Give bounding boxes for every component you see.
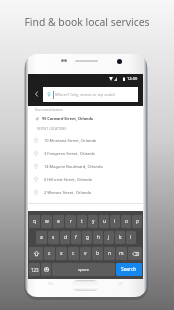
staticText: b xyxy=(96,250,99,257)
staticText: e xyxy=(57,218,60,225)
staticText: l xyxy=(130,234,132,241)
staticText: r xyxy=(70,218,72,225)
button[interactable]: z xyxy=(44,247,55,260)
button[interactable]: 6 Hillcrest Street, Orlando xyxy=(28,173,143,186)
button[interactable]: 10 Montana Street, Orlando xyxy=(28,134,143,147)
staticText: RECENT LOCATIONS xyxy=(37,127,67,131)
staticText: s xyxy=(52,234,55,241)
staticText: Where? (city, street or zip code) xyxy=(55,92,115,98)
button[interactable]: c xyxy=(68,247,79,260)
staticText: w xyxy=(45,218,49,225)
staticText: 6 Hillcrest Street, Orlando xyxy=(44,177,93,182)
button[interactable]: Emoji xyxy=(41,263,51,276)
button[interactable]: Search xyxy=(116,263,142,276)
button[interactable]: a xyxy=(36,231,47,244)
button[interactable]: p xyxy=(132,215,142,228)
staticText: p xyxy=(136,218,139,225)
staticText: c xyxy=(72,250,75,257)
staticText: space xyxy=(78,267,90,273)
button[interactable]: y xyxy=(88,215,98,228)
button[interactable]: g xyxy=(82,231,92,244)
staticText: n xyxy=(108,250,111,257)
button[interactable]: h xyxy=(93,231,103,244)
staticText: k xyxy=(119,234,122,241)
button[interactable]: 3 Fairgreen Street, Orlando xyxy=(28,147,143,160)
staticText: d xyxy=(64,234,67,241)
button[interactable]: n xyxy=(104,247,115,260)
staticText: x xyxy=(60,250,63,257)
staticText: f xyxy=(75,234,77,241)
button[interactable]: v xyxy=(80,247,91,260)
button[interactable]: u xyxy=(99,215,109,228)
button[interactable]: l xyxy=(126,231,136,244)
button[interactable]: 14 Maguire Boulevard, Orlando xyxy=(28,160,143,173)
staticText: 14 Maguire Boulevard, Orlando xyxy=(44,164,103,169)
staticText: Find & book local services xyxy=(0,15,174,29)
button[interactable]: 2 Wessex Street, Orlando xyxy=(28,186,143,199)
staticText: q xyxy=(33,218,36,225)
staticText: g xyxy=(86,234,89,241)
staticText: Search xyxy=(121,266,137,273)
staticText: 123 xyxy=(31,267,39,273)
staticText: 95 Carward Street, Orlando xyxy=(42,116,94,121)
staticText: t xyxy=(81,218,83,225)
button[interactable]: Shift xyxy=(29,247,43,260)
button[interactable]: j xyxy=(104,231,114,244)
staticText: 2 Wessex Street, Orlando xyxy=(44,190,92,195)
button[interactable]: k xyxy=(115,231,125,244)
button[interactable]: s xyxy=(48,231,59,244)
button[interactable]: m xyxy=(116,247,127,260)
button[interactable]: 123 xyxy=(29,263,40,276)
staticText: z xyxy=(48,250,51,257)
staticText: v xyxy=(84,250,87,257)
staticText: h xyxy=(97,234,100,241)
button[interactable]: Backspace xyxy=(128,247,142,260)
button[interactable]: i xyxy=(110,215,120,228)
button[interactable]: x xyxy=(56,247,67,260)
button[interactable]: w xyxy=(41,215,52,228)
staticText: 12:00 xyxy=(127,76,138,81)
staticText: a xyxy=(40,234,43,241)
button[interactable]: o xyxy=(121,215,131,228)
staticText: i xyxy=(114,218,116,225)
staticText: u xyxy=(103,218,106,225)
button[interactable]: r xyxy=(65,215,76,228)
staticText: 3 Fairgreen Street, Orlando xyxy=(44,151,96,156)
button[interactable]: b xyxy=(92,247,103,260)
staticText: y xyxy=(92,218,95,225)
button[interactable]: space xyxy=(52,263,115,276)
staticText: Your current location xyxy=(35,108,63,112)
button[interactable]: q xyxy=(29,215,40,228)
button[interactable]: e xyxy=(53,215,64,228)
button[interactable]: f xyxy=(71,231,81,244)
staticText: 10 Montana Street, Orlando xyxy=(44,138,97,143)
button[interactable]: 95 Carward Street, Orlando xyxy=(28,114,143,124)
staticText: j xyxy=(108,234,110,241)
button[interactable]: t xyxy=(77,215,87,228)
button[interactable]: Back xyxy=(30,88,42,100)
staticText: m xyxy=(119,250,124,257)
button[interactable]: Where? (city, street or zip code) xyxy=(43,87,138,102)
button[interactable]: d xyxy=(60,231,70,244)
staticText: o xyxy=(125,218,128,225)
